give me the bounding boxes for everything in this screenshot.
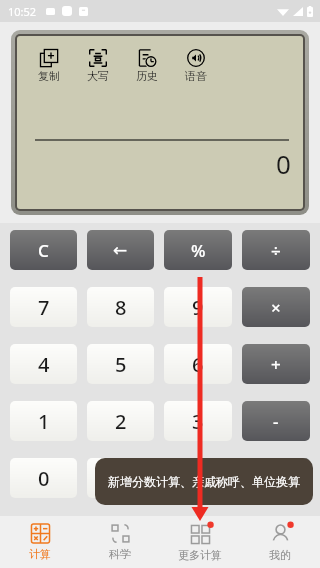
button[interactable]: - (242, 401, 310, 441)
button[interactable]: 新增分数计算、亲戚称呼、单位换算 (95, 458, 313, 505)
staticText: 语音 (185, 69, 207, 83)
staticText: 科学 (109, 547, 131, 561)
staticText: 历史 (136, 69, 158, 83)
staticText: 7 (38, 294, 50, 321)
button[interactable]: 历史 (131, 49, 163, 83)
button[interactable]: AC (242, 458, 310, 498)
staticText: 新增分数计算、亲戚称呼、单位换算 (108, 474, 300, 489)
staticText: 6 (192, 351, 204, 378)
staticText: 0 (38, 465, 50, 492)
staticText: 1 (38, 408, 50, 435)
staticText: 3 (192, 408, 204, 435)
button[interactable]: 我的 (240, 516, 320, 568)
staticText: = (192, 465, 204, 492)
staticText: - (273, 410, 279, 433)
staticText: 2 (115, 408, 127, 435)
staticText: × (271, 296, 281, 319)
button[interactable]: 5 (87, 344, 154, 384)
staticText: 更多计算 (178, 548, 222, 562)
staticText: % (191, 239, 206, 262)
button[interactable]: 8 (87, 287, 154, 327)
button[interactable]: 6 (164, 344, 232, 384)
button[interactable]: % (164, 230, 232, 270)
button[interactable]: C (10, 230, 77, 270)
button[interactable]: 更多计算 (160, 516, 240, 568)
button[interactable]: 大写 (82, 49, 114, 83)
staticText: ÷ (271, 239, 281, 262)
button[interactable]: 1 (10, 401, 77, 441)
button[interactable]: 3 (164, 401, 232, 441)
staticText: 我的 (269, 548, 291, 562)
button[interactable]: 2 (87, 401, 154, 441)
button[interactable]: 0 (10, 458, 77, 498)
staticText: C (38, 239, 49, 262)
button[interactable]: + (242, 344, 310, 384)
staticText: 10:52 (8, 4, 37, 19)
staticText: 复制 (38, 69, 60, 83)
button[interactable]: . (87, 458, 154, 498)
staticText: 5 (115, 351, 127, 378)
button[interactable]: Backspace (87, 230, 154, 270)
staticText: 大写 (87, 69, 109, 83)
staticText: AC (265, 467, 287, 490)
staticText: . (118, 465, 124, 492)
staticText: 0 (276, 146, 291, 181)
button[interactable]: 9 (164, 287, 232, 327)
staticText: 4 (38, 351, 50, 378)
button[interactable]: 4 (10, 344, 77, 384)
button[interactable]: = (164, 458, 232, 498)
staticText: ← (113, 240, 128, 260)
button[interactable]: × (242, 287, 310, 327)
button[interactable]: ÷ (242, 230, 310, 270)
staticText: 8 (115, 294, 127, 321)
staticText: 计算 (29, 547, 51, 561)
staticText: 9 (192, 294, 204, 321)
button[interactable]: 科学 (80, 516, 160, 568)
staticText: + (271, 353, 281, 376)
button[interactable]: 复制 (33, 49, 65, 83)
button[interactable]: 计算 (0, 516, 80, 568)
button[interactable]: 语音 (180, 49, 212, 83)
button[interactable]: 7 (10, 287, 77, 327)
